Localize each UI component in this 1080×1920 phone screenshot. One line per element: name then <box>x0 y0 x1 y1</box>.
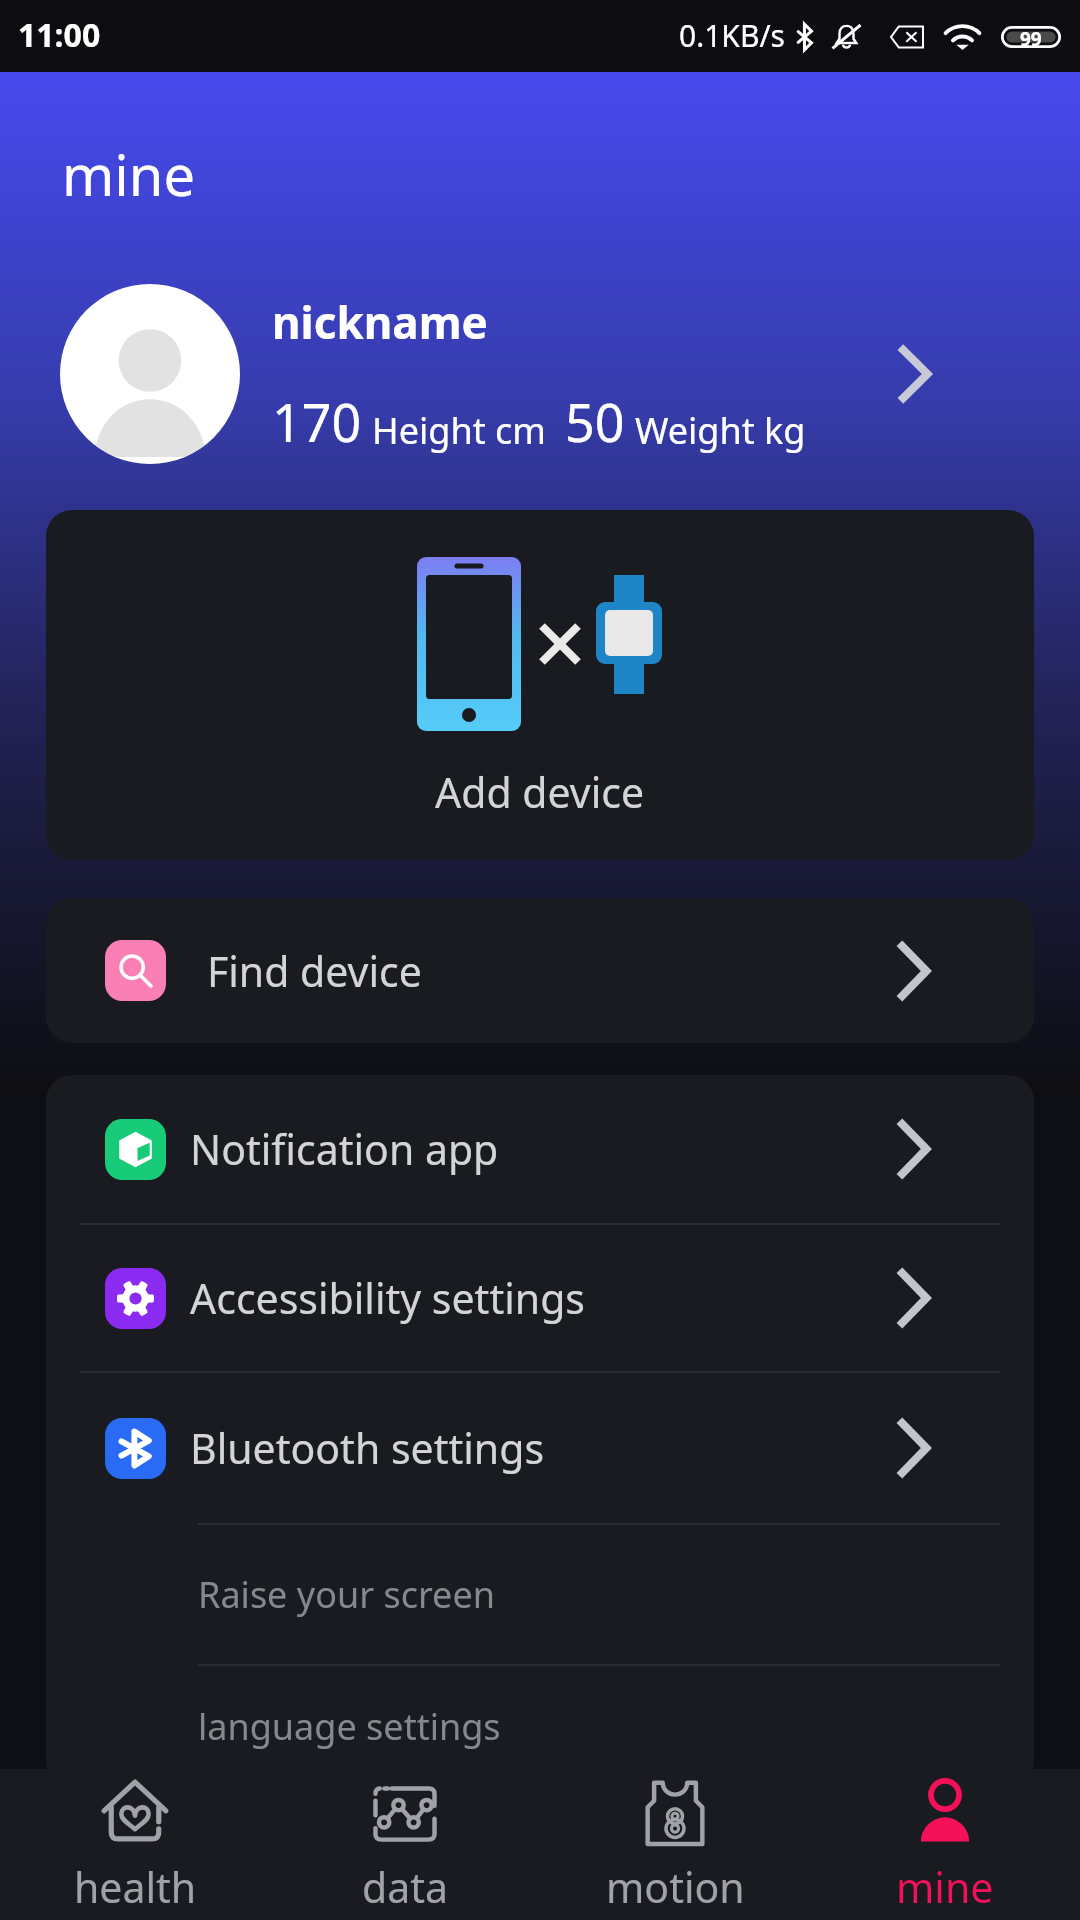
staticText: 170 <box>272 386 362 457</box>
staticText: health <box>74 1859 197 1915</box>
button[interactable]: mine <box>810 1769 1080 1920</box>
button[interactable]: Add device <box>46 510 1034 860</box>
button[interactable]: Raise your screen <box>46 1525 1034 1664</box>
staticText: Notification app <box>190 1121 499 1177</box>
staticText: Bluetooth settings <box>190 1420 545 1476</box>
staticText: Weight kg <box>635 406 806 455</box>
button[interactable]: language settings <box>46 1666 1034 1786</box>
staticText: nickname <box>272 292 488 352</box>
staticText: 11:00 <box>18 13 101 57</box>
button[interactable]: nickname <box>0 274 1080 474</box>
button[interactable]: health <box>0 1769 270 1920</box>
staticText: 0.1KB/s <box>679 15 785 56</box>
button[interactable]: Accessibility settings <box>46 1225 1034 1371</box>
button[interactable]: Notification app <box>46 1075 1034 1223</box>
staticText: motion <box>606 1859 745 1915</box>
button[interactable]: motion <box>540 1769 810 1920</box>
staticText: mine <box>896 1859 994 1915</box>
button[interactable]: data <box>270 1769 540 1920</box>
button[interactable]: Bluetooth settings <box>46 1373 1034 1523</box>
staticText: data <box>362 1859 449 1915</box>
button[interactable]: Find device <box>46 898 1034 1043</box>
staticText: 99 <box>1020 26 1042 48</box>
staticText: Find device <box>207 943 422 999</box>
staticText: Add device <box>435 764 645 820</box>
staticText: 50 <box>565 386 625 457</box>
staticText: Raise your screen <box>198 1570 495 1619</box>
staticText: Height cm <box>372 406 546 455</box>
staticText: Accessibility settings <box>190 1270 585 1326</box>
staticText: mine <box>62 136 195 212</box>
staticText: language settings <box>198 1702 501 1751</box>
